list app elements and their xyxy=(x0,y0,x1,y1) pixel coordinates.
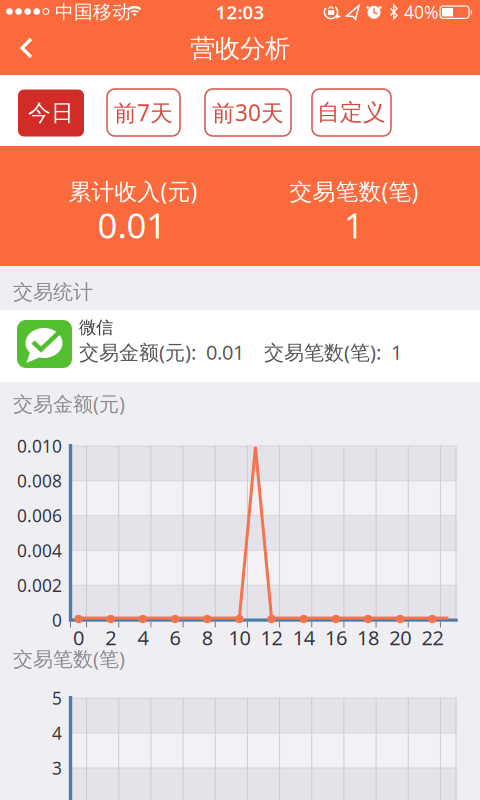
staticText: 0 xyxy=(52,608,62,631)
staticText: 交易笔数(笔) xyxy=(13,645,125,672)
staticText: 前7天 xyxy=(114,97,173,127)
staticText: 0.008 xyxy=(17,469,62,492)
staticText: 22 xyxy=(421,624,443,651)
staticText: 1 xyxy=(344,202,364,248)
staticText: 40% xyxy=(404,0,438,23)
button[interactable]: 前30天 xyxy=(205,89,291,136)
staticText: 8 xyxy=(202,624,213,651)
staticText: 营收分析 xyxy=(190,33,290,64)
staticText: 自定义 xyxy=(317,99,386,126)
staticText: 0.01 xyxy=(97,202,166,248)
staticText: 交易金额(元): 0.01 交易笔数(笔): 1 xyxy=(79,339,402,365)
staticText: 3 xyxy=(52,756,62,779)
staticText: 中国移动 xyxy=(55,0,131,23)
button[interactable]: 前7天 xyxy=(107,89,180,136)
button[interactable] xyxy=(4,26,48,70)
staticText: 微信 xyxy=(79,317,113,338)
staticText: 12:03 xyxy=(215,0,264,24)
button[interactable]: 自定义 xyxy=(312,89,391,136)
staticText: 0.002 xyxy=(17,574,62,597)
staticText: 2 xyxy=(105,624,116,651)
staticText: 前30天 xyxy=(212,97,284,127)
staticText: 今日 xyxy=(28,99,74,127)
staticText: 12 xyxy=(260,624,282,651)
staticText: 4 xyxy=(137,624,148,651)
staticText: 0.006 xyxy=(17,504,62,527)
staticText: 0 xyxy=(73,624,84,651)
button[interactable]: 微信 xyxy=(0,310,480,382)
button[interactable]: 今日 xyxy=(18,89,84,136)
staticText: 0.010 xyxy=(17,434,62,457)
staticText: 16 xyxy=(325,624,347,651)
staticText: 5 xyxy=(52,686,62,709)
staticText: 6 xyxy=(169,624,180,651)
staticText: 14 xyxy=(293,624,315,651)
staticText: 20 xyxy=(389,624,411,651)
staticText: 累计收入(元) xyxy=(68,176,197,206)
staticText: 交易金额(元) xyxy=(13,390,125,417)
staticText: 交易笔数(笔) xyxy=(289,176,418,206)
staticText: 10 xyxy=(228,624,250,651)
staticText: 4 xyxy=(52,721,62,744)
staticText: 0.004 xyxy=(17,539,62,562)
staticText: 18 xyxy=(357,624,379,651)
staticText: 交易统计 xyxy=(13,280,93,304)
